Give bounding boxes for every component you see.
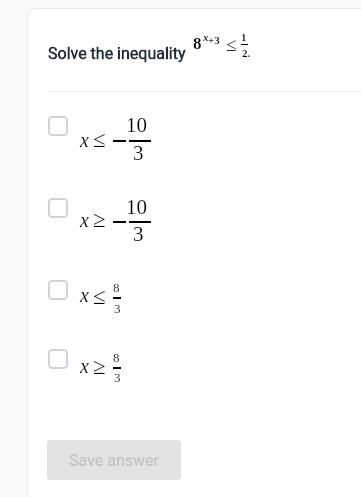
- staticText: 1: [241, 31, 247, 43]
- button[interactable]: x is greater than or equal to minus ten …: [48, 198, 68, 218]
- button[interactable]: x is less than or equal to eight thirds: [48, 280, 68, 300]
- staticText: 3: [114, 370, 121, 384]
- staticText: 10: [126, 113, 147, 136]
- staticText: ≥: [93, 354, 106, 379]
- staticText: ≤: [226, 34, 237, 55]
- staticText: ≤: [93, 284, 106, 309]
- staticText: Save answer: [69, 451, 159, 470]
- staticText: ≥: [93, 207, 106, 232]
- staticText: x: [203, 31, 209, 43]
- staticText: 10: [126, 195, 147, 218]
- staticText: ≤: [93, 127, 106, 152]
- staticText: 3: [133, 222, 144, 245]
- staticText: 8: [113, 350, 120, 364]
- staticText: 3: [133, 141, 144, 164]
- staticText: x: [80, 355, 89, 377]
- staticText: 2.: [242, 47, 251, 59]
- staticText: x: [80, 284, 89, 306]
- staticText: 8: [193, 34, 202, 53]
- staticText: Solve the inequality: [48, 44, 186, 63]
- button[interactable]: Save answer: [47, 440, 181, 480]
- staticText: 3: [114, 301, 121, 315]
- button[interactable]: x is greater than or equal to eight thir…: [48, 349, 68, 369]
- staticText: +3: [208, 34, 220, 46]
- staticText: 8: [113, 280, 120, 294]
- staticText: x: [80, 129, 89, 151]
- button[interactable]: x is less than or equal to minus ten thi…: [48, 116, 68, 136]
- staticText: x: [80, 209, 89, 231]
